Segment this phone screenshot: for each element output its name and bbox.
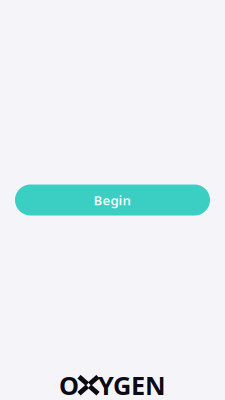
staticText: O — [59, 368, 79, 400]
staticText: YGEN — [98, 368, 166, 400]
staticText: Begin — [93, 191, 131, 209]
button[interactable]: Begin — [15, 184, 210, 215]
